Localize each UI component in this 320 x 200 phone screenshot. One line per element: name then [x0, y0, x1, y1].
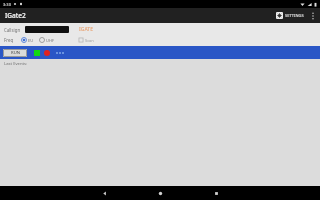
button[interactable]: Back — [91, 186, 117, 200]
staticText: Scan — [85, 38, 94, 43]
button[interactable]: UHF — [38, 37, 55, 43]
staticText: SETTINGS — [285, 13, 304, 18]
button[interactable]: Record — [44, 50, 50, 56]
staticText: Last Events: — [4, 61, 28, 67]
button[interactable] — [25, 26, 69, 33]
button[interactable]: More — [55, 51, 65, 55]
staticText: IGate2 — [5, 11, 26, 20]
staticText: Callsign — [4, 27, 21, 33]
button[interactable]: EU — [20, 37, 35, 43]
button[interactable]: RUN — [3, 49, 27, 57]
staticText: 3:30 — [3, 2, 11, 7]
staticText: EU — [28, 38, 34, 43]
button[interactable]: Scan — [77, 37, 95, 43]
button[interactable]: SETTINGS — [274, 11, 306, 20]
staticText: Freq — [4, 37, 14, 43]
staticText: RUN — [11, 50, 20, 56]
button[interactable]: More options — [309, 9, 317, 22]
button[interactable]: Recent apps — [203, 186, 229, 200]
button[interactable]: Home — [147, 186, 173, 200]
staticText: IGATE — [79, 26, 93, 33]
staticText: UHF — [46, 38, 54, 43]
